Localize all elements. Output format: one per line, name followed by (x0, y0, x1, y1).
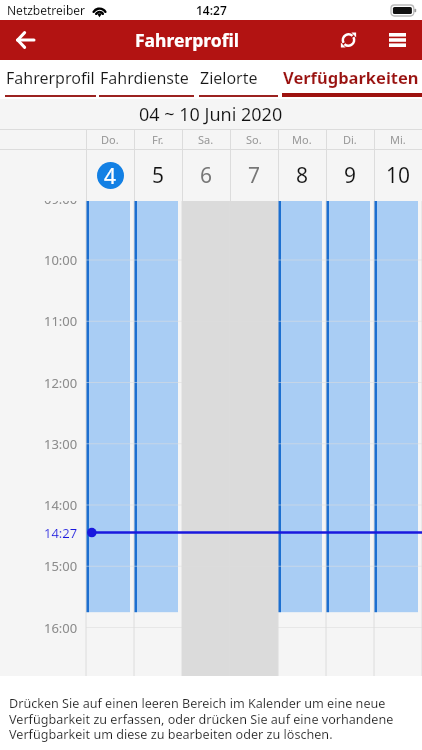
staticText: Netzbetreiber (7, 2, 86, 18)
staticText: 9 (344, 161, 357, 190)
staticText: Di. (343, 132, 357, 147)
button[interactable]: Zielorte (199, 60, 282, 99)
staticText: 8 (296, 161, 309, 190)
staticText: 10:00 (44, 251, 78, 269)
staticText: So. (246, 132, 262, 147)
button[interactable]: Back (0, 20, 49, 60)
button[interactable]: Verfügbarkeiten (282, 60, 422, 99)
button[interactable]: 7 (230, 150, 278, 201)
staticText: 04 ~ 10 Juni 2020 (139, 102, 283, 127)
button[interactable]: Fahrdienste (99, 60, 199, 99)
staticText: 14:27 (196, 2, 227, 18)
staticText: 4 (104, 162, 117, 189)
staticText: 09:00 (44, 201, 78, 208)
staticText: 10 (386, 161, 411, 190)
staticText: Mi. (390, 132, 406, 147)
staticText: Do. (101, 132, 119, 147)
staticText: 13:00 (44, 435, 78, 453)
staticText: 14:00 (44, 496, 78, 514)
button[interactable]: Refresh (325, 20, 372, 60)
staticText: Drücken Sie auf einen leeren Bereich im … (9, 695, 414, 742)
staticText: 14:27 (44, 524, 78, 542)
button[interactable]: Fahrerprofil (0, 60, 99, 99)
staticText: Fahrerprofil (135, 28, 239, 52)
staticText: Fr. (152, 132, 164, 147)
button[interactable]: Menu (372, 20, 422, 60)
staticText: 5 (152, 161, 165, 190)
staticText: Zielorte (200, 67, 258, 89)
staticText: Fahrerprofil (6, 67, 95, 89)
button[interactable]: 9 (326, 150, 374, 201)
staticText: 7 (248, 161, 261, 190)
button[interactable]: 5 (134, 150, 182, 201)
button[interactable]: 6 (182, 150, 230, 201)
button[interactable]: 10 (374, 150, 422, 201)
staticText: 15:00 (44, 557, 78, 575)
staticText: Fahrdienste (100, 67, 189, 89)
staticText: Verfügbarkeiten (283, 66, 419, 88)
staticText: 6 (200, 161, 213, 190)
staticText: 11:00 (44, 312, 78, 330)
staticText: Sa. (198, 132, 214, 147)
staticText: 16:00 (44, 619, 78, 637)
staticText: 12:00 (44, 374, 78, 392)
button[interactable]: 8 (278, 150, 326, 201)
staticText: Mo. (292, 132, 312, 147)
button[interactable]: 4 (86, 150, 134, 201)
